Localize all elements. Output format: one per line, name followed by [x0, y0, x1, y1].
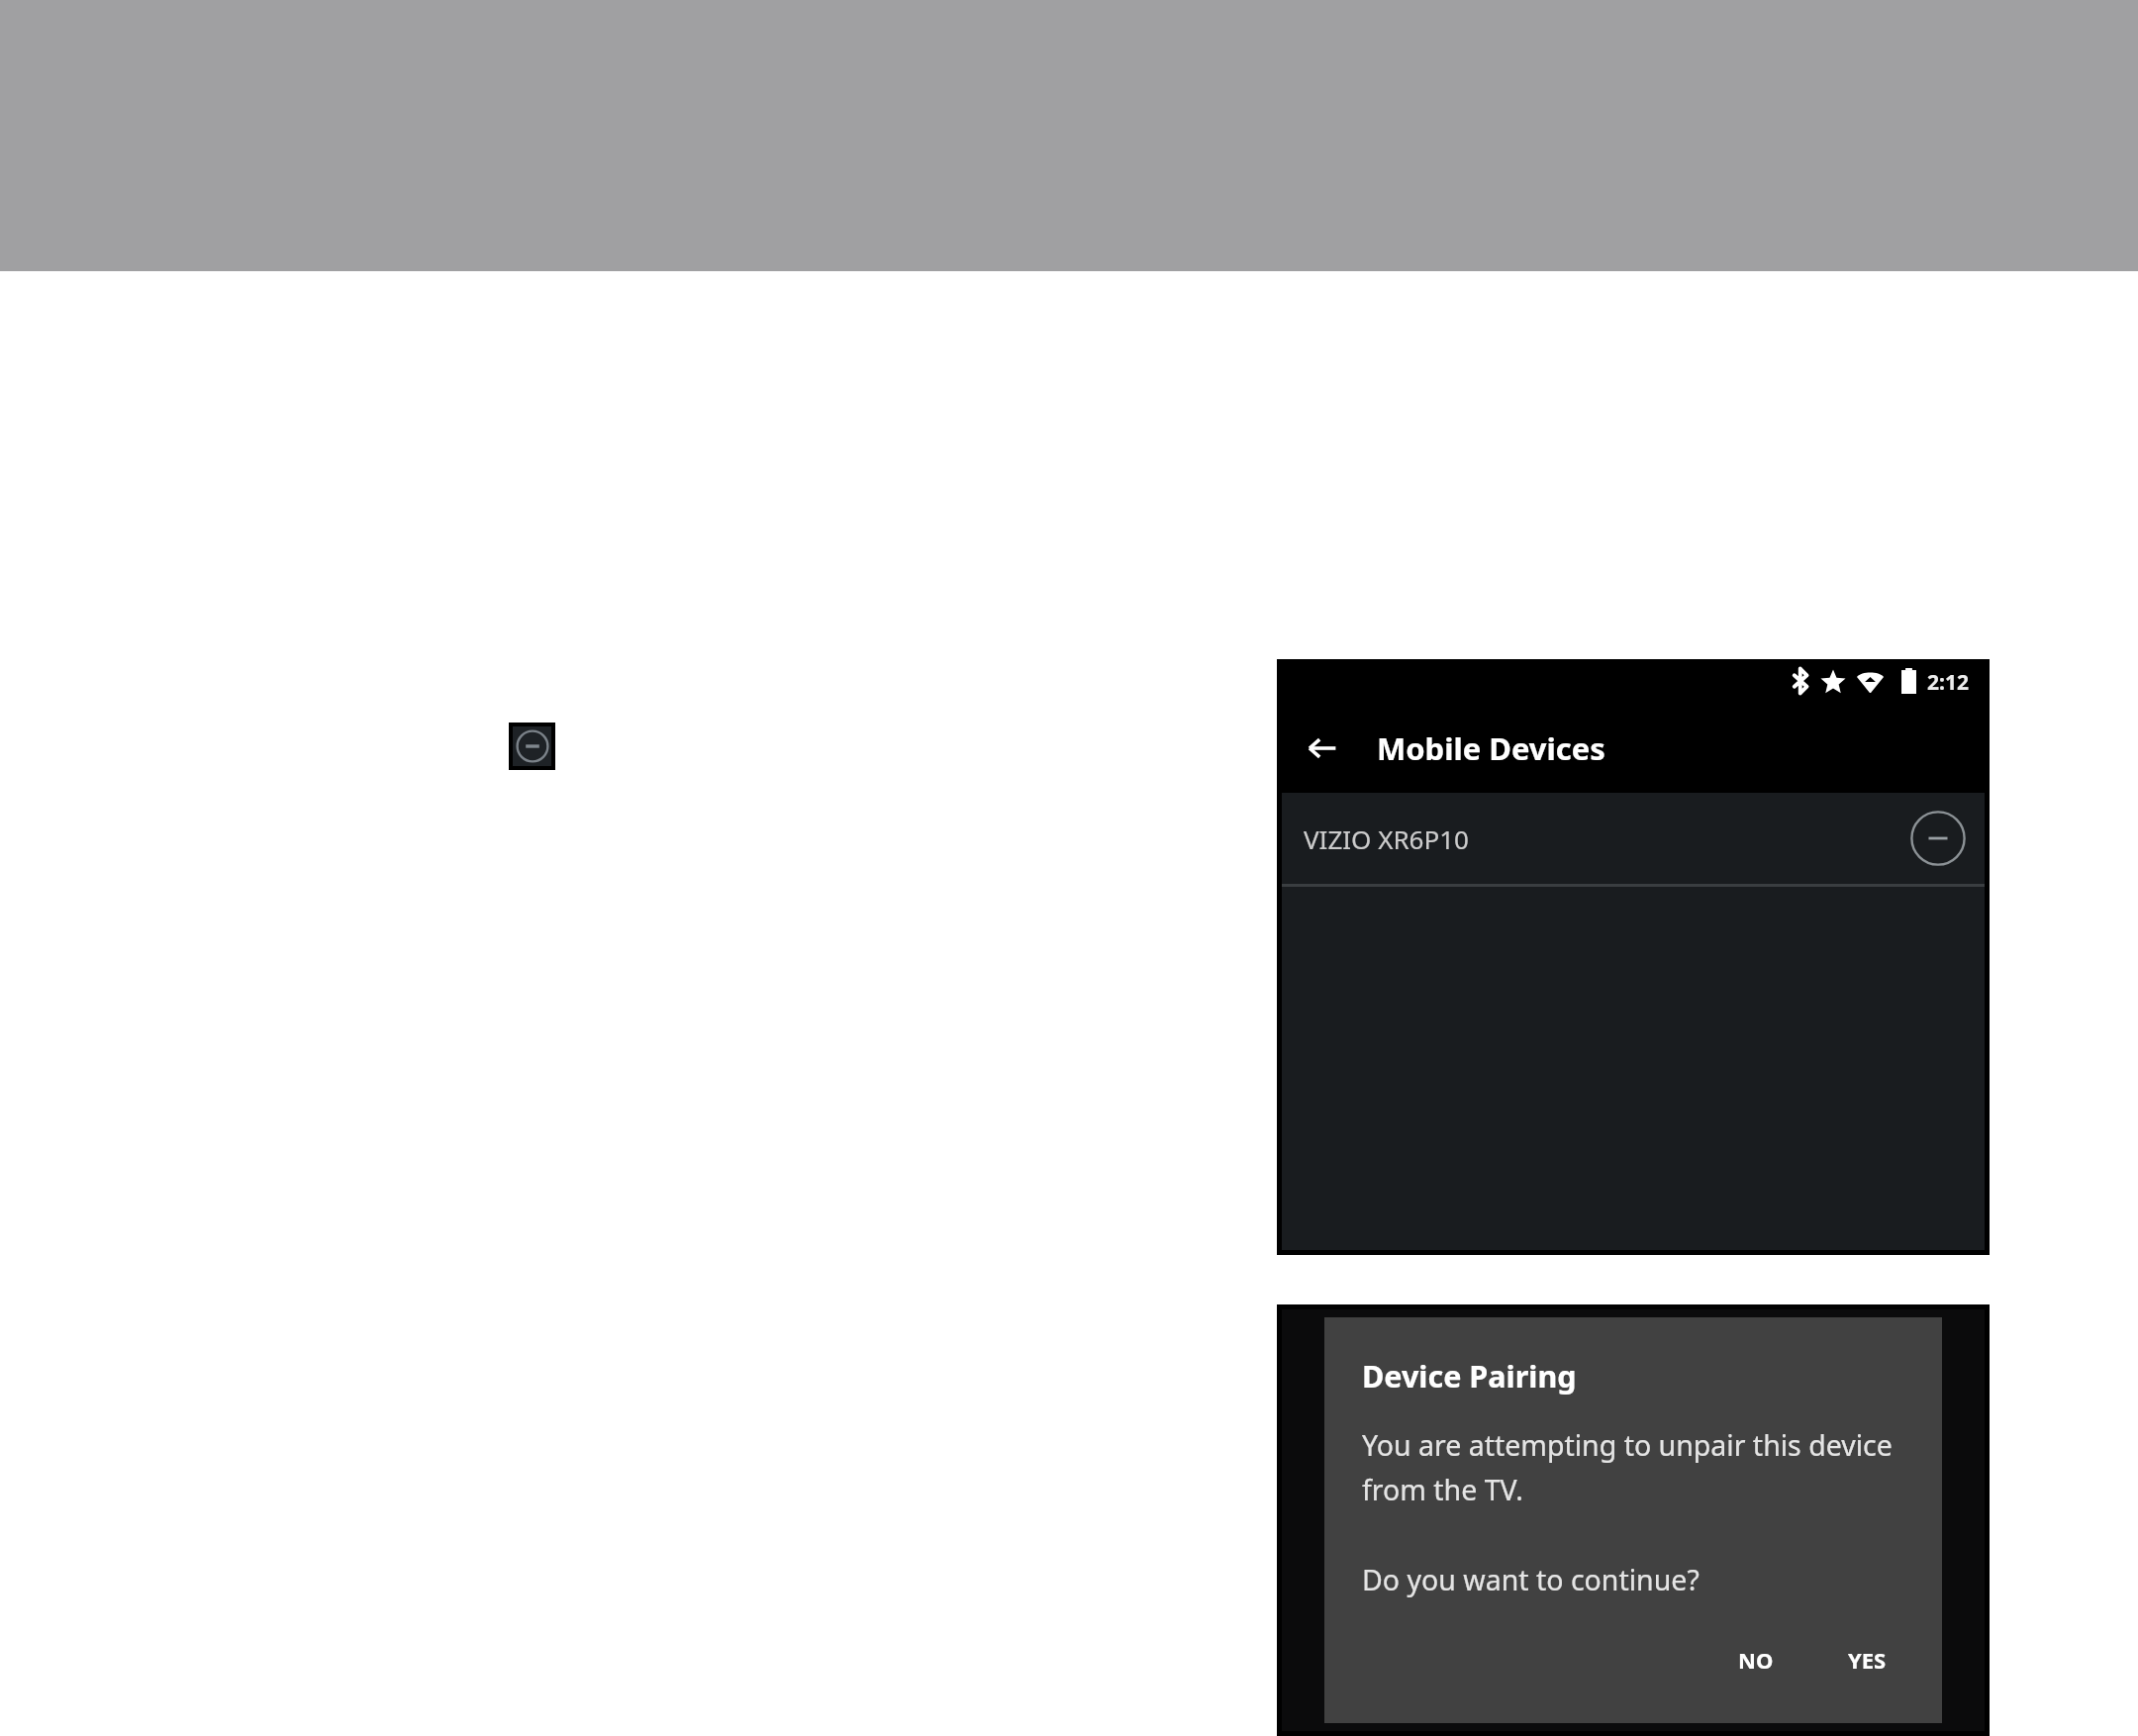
staticText: NO: [1738, 1645, 1774, 1675]
staticText: YES: [1848, 1645, 1887, 1675]
button[interactable]: Unpair: [1909, 810, 1967, 867]
button[interactable]: NO: [1724, 1638, 1788, 1682]
button[interactable]: YES: [1834, 1638, 1900, 1682]
staticText: Do you want to continue?: [1362, 1561, 1700, 1599]
button[interactable]: Unpair device: [509, 723, 555, 770]
staticText: You are attempting to unpair this device…: [1362, 1426, 1893, 1509]
staticText: 2:12: [1927, 668, 1969, 697]
button[interactable]: Back: [1303, 729, 1340, 767]
button[interactable]: VIZIO XR6P10: [1282, 793, 1985, 884]
staticText: Device Pairing: [1362, 1355, 1577, 1397]
staticText: VIZIO XR6P10: [1304, 821, 1469, 856]
staticText: Mobile Devices: [1377, 727, 1605, 769]
